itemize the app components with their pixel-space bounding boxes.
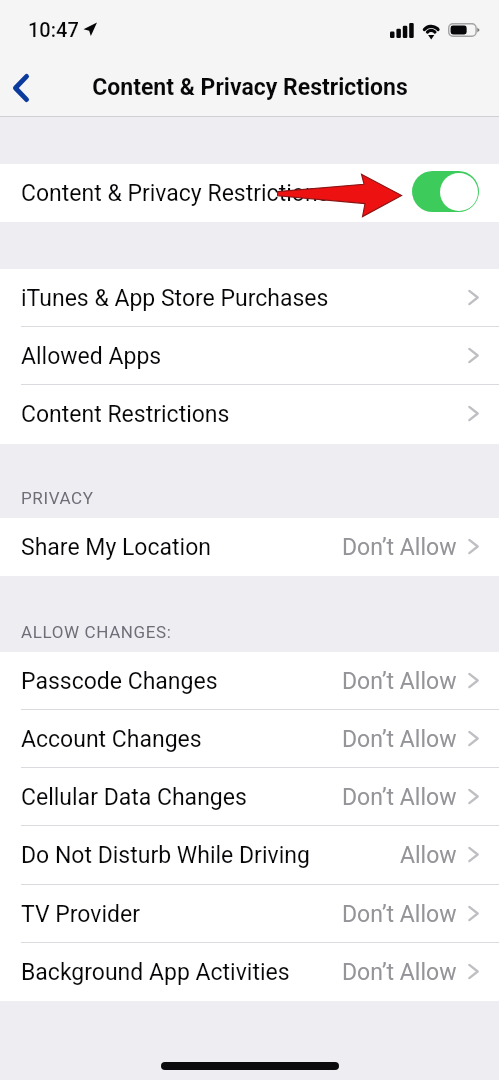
- staticText: ALLOW CHANGES:: [21, 622, 172, 642]
- staticText: Allowed Apps: [21, 343, 162, 370]
- button[interactable]: iTunes & App Store Purchases: [0, 269, 499, 327]
- staticText: 10:47: [28, 18, 79, 41]
- staticText: Passcode Changes: [21, 668, 218, 695]
- staticText: Allow: [400, 842, 457, 869]
- button[interactable]: Cellular Data Changes: [0, 768, 499, 826]
- staticText: Account Changes: [21, 726, 202, 753]
- staticText: Don’t Allow: [342, 901, 457, 928]
- button[interactable]: Allowed Apps: [0, 327, 499, 385]
- staticText: TV Provider: [21, 901, 140, 928]
- staticText: PRIVACY: [21, 488, 94, 508]
- staticText: Don’t Allow: [342, 668, 457, 695]
- button[interactable]: Content and Privacy Restrictions switch: [412, 171, 479, 212]
- staticText: Share My Location: [21, 534, 211, 561]
- staticText: iTunes & App Store Purchases: [21, 285, 329, 312]
- staticText: Don’t Allow: [342, 534, 457, 561]
- button[interactable]: Content Restrictions: [0, 385, 499, 444]
- staticText: Don’t Allow: [342, 726, 457, 753]
- staticText: Do Not Disturb While Driving: [21, 842, 310, 869]
- button[interactable]: TV Provider: [0, 885, 499, 943]
- button[interactable]: Account Changes: [0, 710, 499, 768]
- staticText: Don’t Allow: [342, 784, 457, 811]
- staticText: Cellular Data Changes: [21, 784, 247, 811]
- staticText: Don’t Allow: [342, 959, 457, 986]
- staticText: Content Restrictions: [21, 401, 230, 428]
- button[interactable]: Back: [0, 61, 54, 115]
- staticText: Content & Privacy Restrictions: [92, 74, 408, 101]
- button[interactable]: Background App Activities: [0, 943, 499, 1001]
- button[interactable]: Do Not Disturb While Driving: [0, 826, 499, 885]
- button[interactable]: Passcode Changes: [0, 652, 499, 710]
- staticText: Background App Activities: [21, 959, 290, 986]
- staticText: Content & Privacy Restrictions: [21, 180, 330, 207]
- button[interactable]: Share My Location: [0, 518, 499, 576]
